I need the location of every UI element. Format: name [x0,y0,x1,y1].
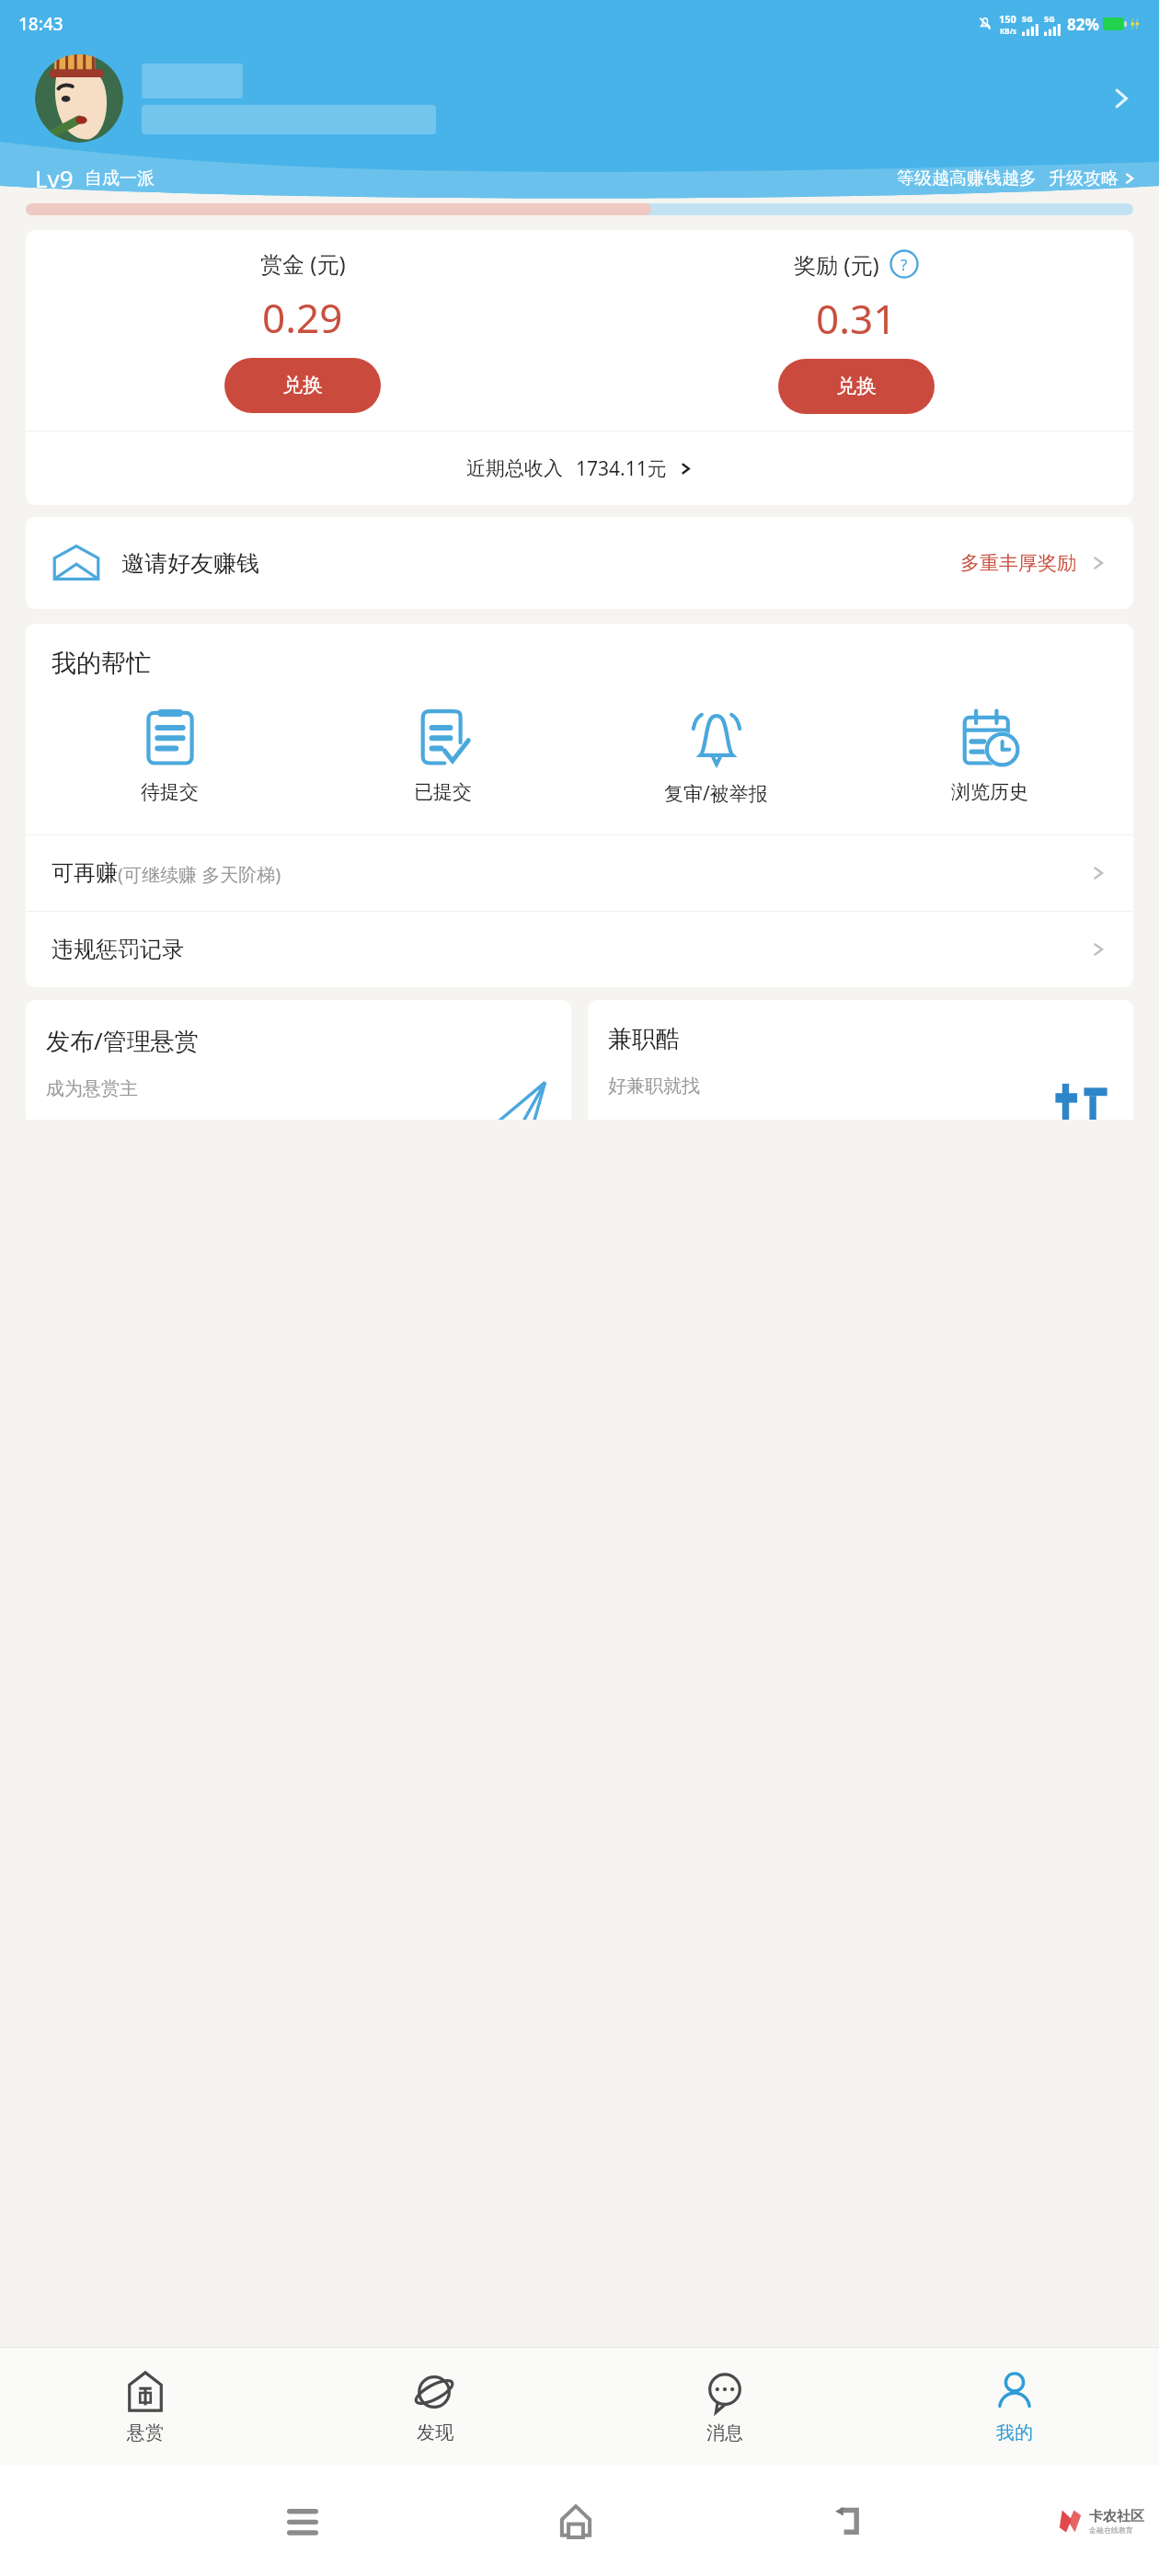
staticText: 我的 [996,2421,1033,2444]
button[interactable]: 复审/被举报 [579,707,853,809]
staticText: 违规惩罚记录 [52,936,184,963]
staticText: 18:43 [18,12,63,36]
button[interactable]: 我的 [869,2348,1159,2466]
staticText: 自成一派 [85,167,155,190]
staticText: 金融在线教育 [1089,2525,1133,2535]
staticText: (可继续赚 多天阶梯) [118,862,281,887]
staticText: 82% [1067,14,1099,35]
staticText: ? [901,254,908,275]
staticText: 浏览历史 [951,780,1028,804]
staticText: 消息 [706,2421,743,2444]
staticText: KB/s [1000,26,1016,36]
button[interactable]: 邀请好友赚钱 [26,517,1133,609]
button[interactable]: 可再赚 [26,835,1133,911]
staticText: 悬赏 [127,2421,164,2444]
staticText: 兑换 [836,374,877,399]
button[interactable]: 等级越高赚钱越多 [897,167,1137,190]
staticText: 0.29 [262,290,343,345]
staticText: 成为悬赏主 [46,1077,138,1100]
button[interactable]: 返回 [826,2498,872,2544]
button[interactable]: 帮助 [889,248,920,280]
staticText: 已提交 [414,780,472,804]
button[interactable]: 发现 [290,2348,579,2466]
staticText: 近期总收入 [466,456,563,480]
button[interactable]: 消息 [579,2348,869,2466]
staticText: 兑换 [282,373,323,398]
button[interactable]: 近期总收入 [26,431,1133,505]
staticText: 复审/被举报 [664,780,768,807]
staticText: 5G [1022,13,1033,24]
staticText: 我的帮忙 [52,648,151,679]
button[interactable]: 最近任务 [280,2498,326,2544]
button[interactable]: 主页 [553,2498,599,2544]
staticText: 5G [1044,13,1055,24]
staticText: Lv9 [35,162,74,194]
staticText: 发布/管理悬赏 [46,1024,199,1057]
button[interactable]: 待提交 [33,707,306,806]
staticText: 升级攻略 [1049,167,1119,190]
staticText: 奖励 (元) [794,249,879,280]
button[interactable]: 违规惩罚记录 [26,912,1133,987]
staticText: 待提交 [141,780,199,804]
staticText: 0.31 [816,291,897,346]
staticText: 1734.11元 [576,455,667,482]
button[interactable]: 已提交 [306,707,579,806]
button[interactable]: 兼职酷 [588,1000,1133,1120]
staticText: 发现 [417,2421,453,2444]
button[interactable]: 兑换 [224,358,381,413]
staticText: 赏金 (元) [260,248,346,279]
staticText: 邀请好友赚钱 [121,549,259,578]
staticText: 150 [999,12,1016,26]
button[interactable]: 兑换 [778,359,935,414]
staticText: 好兼职就找 [608,1075,700,1098]
staticText: 可再赚 [52,859,118,887]
button[interactable] [35,48,1137,149]
staticText: 卡农社区 [1089,2508,1144,2525]
button[interactable]: 悬赏 [0,2348,290,2466]
staticText: 多重丰厚奖励 [960,551,1076,575]
button[interactable]: 浏览历史 [853,707,1126,806]
staticText: 兼职酷 [608,1024,680,1054]
staticText: 等级越高赚钱越多 [897,167,1037,190]
button[interactable]: 发布/管理悬赏 [26,1000,571,1120]
